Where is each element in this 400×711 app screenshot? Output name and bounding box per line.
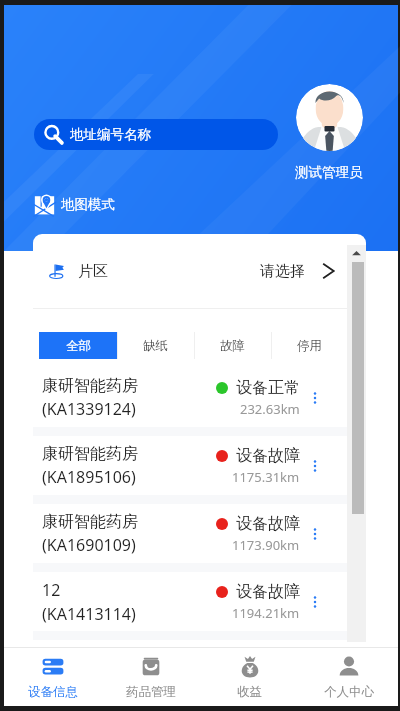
staticText: 收益 [237,684,262,700]
staticText: 停用 [297,338,322,354]
staticText: 地图模式 [61,196,115,213]
button[interactable]: User profile [296,84,363,151]
button[interactable]: 缺纸 [117,332,194,359]
staticText: 设备信息 [28,684,78,700]
button[interactable]: 康研智能药房 [33,368,366,427]
staticText: 1173.90km [232,536,300,554]
staticText: 12 [42,579,61,601]
staticText: 康研智能药房 [42,512,138,532]
staticText: 232.63km [240,400,300,418]
staticText: 片区 [78,262,108,281]
button[interactable]: 停用 [271,332,348,359]
button[interactable]: 地图模式 [33,193,115,216]
staticText: 全部 [66,338,91,354]
button[interactable]: 片区 [33,234,366,308]
button[interactable]: 康研智能药房 [33,436,366,495]
button[interactable]: 全部 [39,332,117,359]
staticText: 康研智能药房 [42,444,138,464]
staticText: 设备故障 [236,514,300,534]
staticText: 药品管理 [126,684,176,700]
button[interactable]: More options [308,595,322,609]
staticText: 设备故障 [236,582,300,602]
staticText: 故障 [220,338,245,354]
button[interactable]: 12 [33,572,366,631]
staticText: 设备故障 [236,446,300,466]
button[interactable]: 收益 [200,648,299,706]
staticText: 康研智能药房 [42,376,138,396]
staticText: 地址编号名称 [70,126,151,143]
button[interactable]: More options [308,459,322,473]
staticText: 测试管理员 [295,164,363,181]
staticText: (KA1895106) [42,466,136,488]
button[interactable]: More options [308,527,322,541]
staticText: 1175.31km [232,468,300,486]
button[interactable]: 故障 [194,332,271,359]
staticText: 设备正常 [236,378,300,398]
staticText: 请选择 [260,262,305,281]
staticText: (KA1690109) [42,534,136,556]
staticText: (KA1339124) [42,398,136,420]
button[interactable]: 设备信息 [4,648,102,706]
staticText: (KA1413114) [42,603,136,625]
staticText: 缺纸 [143,338,168,354]
staticText: 1194.21km [232,604,300,622]
button[interactable]: 康研智能药房 [33,504,366,563]
staticText: 个人中心 [324,684,374,700]
button[interactable]: 地址编号名称 [34,119,278,150]
button[interactable]: More options [308,391,322,405]
button[interactable]: 个人中心 [299,648,398,706]
button[interactable]: 药品管理 [102,648,200,706]
